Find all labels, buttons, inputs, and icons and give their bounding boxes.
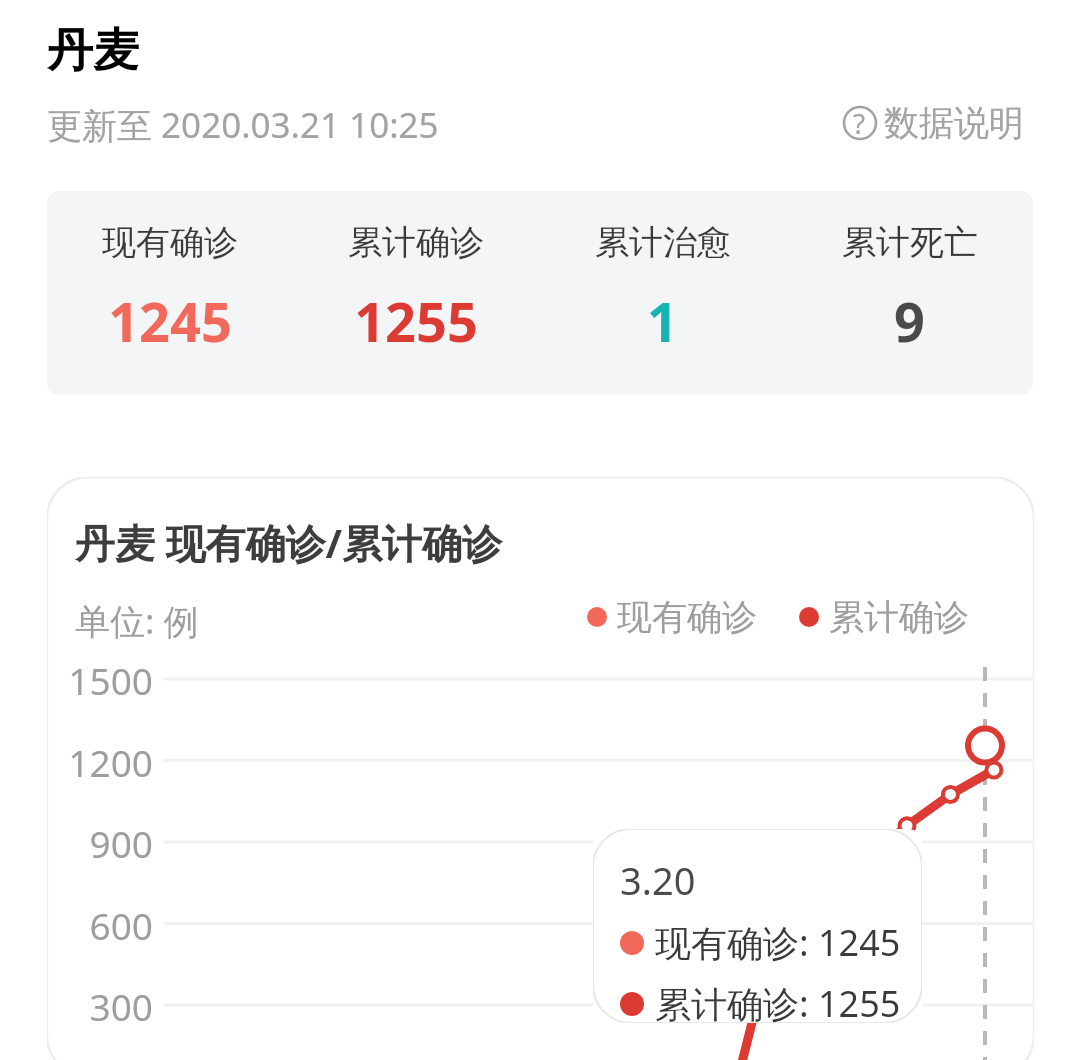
staticText: 累计治愈 [595, 221, 731, 264]
staticText: 1 [647, 284, 678, 358]
button[interactable]: 现有确诊 [47, 191, 1033, 395]
staticText: 累计确诊 [348, 221, 484, 264]
staticText: 1500 [65, 655, 153, 705]
staticText: 现有确诊 [102, 221, 238, 264]
staticText: 单位: 例 [75, 597, 199, 645]
staticText: 丹麦 现有确诊/累计确诊 [75, 515, 502, 570]
staticText: 累计死亡 [842, 221, 978, 264]
staticText: 1255 [354, 284, 478, 358]
staticText: 900 [65, 818, 153, 868]
staticText: 更新至 2020.03.21 10:25 [47, 101, 439, 149]
staticText: 9 [894, 284, 925, 358]
button[interactable]: 丹麦 现有确诊/累计确诊 [47, 477, 1034, 1060]
staticText: 现有确诊: 1245 [655, 918, 901, 967]
button[interactable]: 数据说明 [838, 99, 1028, 147]
staticText: 数据说明 [884, 101, 1024, 145]
staticText: 累计确诊 [829, 595, 969, 639]
staticText: 1245 [108, 284, 232, 358]
staticText: ? [853, 104, 866, 142]
staticText: 丹麦 [47, 22, 139, 80]
staticText: 累计确诊: 1255 [655, 979, 901, 1023]
staticText: 现有确诊 [617, 595, 757, 639]
staticText: 300 [65, 981, 153, 1031]
staticText: 600 [65, 900, 153, 950]
staticText: 3.20 [620, 854, 696, 906]
button[interactable]: 现有确诊 [587, 595, 969, 639]
staticText: 1200 [65, 737, 153, 787]
